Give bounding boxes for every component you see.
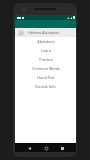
- button[interactable]: Double Info: [15, 82, 76, 91]
- staticText: Hand Test: [37, 75, 55, 80]
- button[interactable]: Hand Test: [15, 73, 76, 82]
- staticText: Common Words: [32, 66, 60, 71]
- button[interactable]: Practice: [15, 55, 76, 64]
- button[interactable]: Common Words: [15, 64, 76, 73]
- staticText: Hebrew Alphabets: [28, 30, 59, 35]
- staticText: Double Info: [35, 84, 56, 89]
- staticText: Alphabets: [37, 39, 55, 44]
- staticText: Learn: [41, 48, 51, 53]
- button[interactable]: Back: [26, 145, 32, 151]
- button[interactable]: Select: [15, 28, 76, 37]
- button[interactable]: Recent apps: [59, 145, 65, 151]
- button[interactable]: Learn: [15, 46, 76, 55]
- button[interactable]: Home: [43, 145, 49, 151]
- other: Select: [19, 31, 23, 35]
- staticText: Practice: [39, 57, 53, 62]
- button[interactable]: Alphabets: [15, 37, 76, 46]
